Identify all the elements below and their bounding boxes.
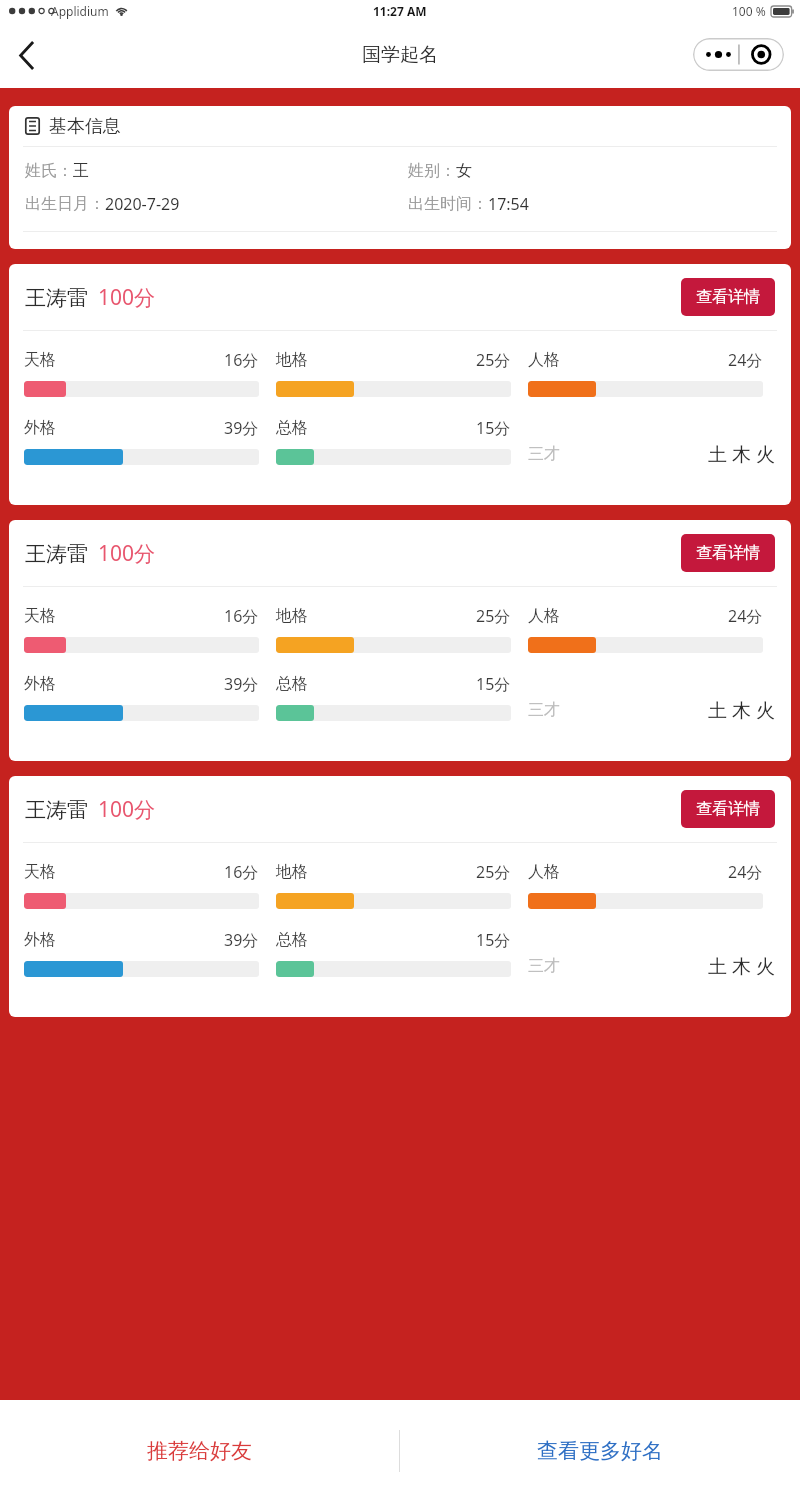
staticText: 24分 <box>728 605 763 627</box>
staticText: 出生日月： <box>25 194 105 214</box>
staticText: 推荐给好友 <box>147 1438 252 1464</box>
staticText: 三才 <box>528 444 560 464</box>
staticText: 土 木 火 <box>708 953 775 979</box>
staticText: 地格 <box>276 862 308 882</box>
staticText: 16分 <box>224 861 259 883</box>
staticText: 查看详情 <box>696 799 760 819</box>
staticText: 国学起名 <box>362 43 438 67</box>
staticText: 地格 <box>276 350 308 370</box>
staticText: 15分 <box>476 673 511 695</box>
staticText: 39分 <box>224 929 259 951</box>
staticText: 总格 <box>276 674 308 694</box>
staticText: 土 木 火 <box>708 697 775 723</box>
staticText: 姓氏： <box>25 161 73 181</box>
staticText: 24分 <box>728 861 763 883</box>
button[interactable]: 查看更多好名 <box>400 1400 800 1501</box>
button[interactable]: Back <box>0 28 54 82</box>
staticText: 三才 <box>528 700 560 720</box>
staticText: 100分 <box>98 795 156 824</box>
staticText: 地格 <box>276 606 308 626</box>
staticText: 总格 <box>276 930 308 950</box>
staticText: 王涛雷 <box>25 285 88 311</box>
staticText: 女 <box>456 161 472 181</box>
staticText: 人格 <box>528 350 560 370</box>
button[interactable]: 查看详情 <box>681 534 775 572</box>
staticText: 16分 <box>224 605 259 627</box>
staticText: 100分 <box>98 539 156 568</box>
staticText: Applidium <box>51 3 109 19</box>
staticText: 查看详情 <box>696 543 760 563</box>
staticText: 人格 <box>528 862 560 882</box>
staticText: 11:27 AM <box>373 3 427 19</box>
staticText: 天格 <box>24 606 56 626</box>
staticText: 15分 <box>476 929 511 951</box>
staticText: 25分 <box>476 349 511 371</box>
staticText: 查看更多好名 <box>537 1438 663 1464</box>
button[interactable]: 王涛雷 <box>9 264 791 505</box>
staticText: 2020-7-29 <box>105 193 180 215</box>
staticText: 16分 <box>224 349 259 371</box>
button[interactable]: 推荐给好友 <box>0 1400 399 1501</box>
button[interactable]: 基本信息 <box>9 106 791 249</box>
button[interactable]: 查看详情 <box>681 278 775 316</box>
staticText: 三才 <box>528 956 560 976</box>
staticText: 25分 <box>476 605 511 627</box>
staticText: 外格 <box>24 674 56 694</box>
button[interactable]: More options and close <box>693 38 784 71</box>
staticText: 24分 <box>728 349 763 371</box>
staticText: 外格 <box>24 418 56 438</box>
staticText: 总格 <box>276 418 308 438</box>
staticText: 39分 <box>224 417 259 439</box>
button[interactable]: 查看详情 <box>681 790 775 828</box>
staticText: 基本信息 <box>49 115 121 138</box>
button[interactable]: 王涛雷 <box>9 776 791 1017</box>
staticText: 土 木 火 <box>708 441 775 467</box>
staticText: 王 <box>73 161 89 181</box>
staticText: 姓别： <box>408 161 456 181</box>
staticText: 查看详情 <box>696 287 760 307</box>
staticText: 王涛雷 <box>25 797 88 823</box>
staticText: 人格 <box>528 606 560 626</box>
button[interactable]: 王涛雷 <box>9 520 791 761</box>
staticText: 100分 <box>98 283 156 312</box>
staticText: 39分 <box>224 673 259 695</box>
staticText: 天格 <box>24 862 56 882</box>
staticText: 25分 <box>476 861 511 883</box>
staticText: 出生时间： <box>408 194 488 214</box>
staticText: 外格 <box>24 930 56 950</box>
staticText: 王涛雷 <box>25 541 88 567</box>
staticText: 17:54 <box>488 193 529 215</box>
staticText: 天格 <box>24 350 56 370</box>
staticText: 100 % <box>732 3 766 19</box>
staticText: 15分 <box>476 417 511 439</box>
